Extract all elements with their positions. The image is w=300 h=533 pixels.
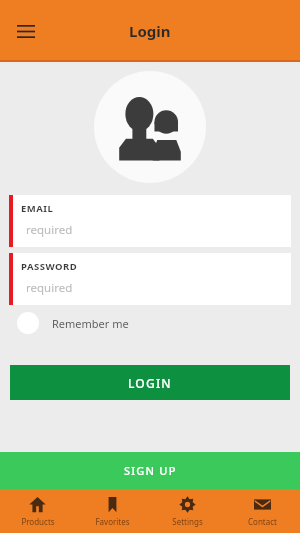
staticText: Login: [129, 21, 171, 41]
staticText: Favorites: [95, 516, 130, 527]
staticText: Settings: [172, 516, 203, 527]
staticText: Remember me: [52, 316, 129, 331]
staticText: EMAIL: [21, 202, 54, 215]
button[interactable]: Contact: [225, 489, 300, 533]
button[interactable]: Products: [0, 489, 75, 533]
button[interactable]: Remember me: [0, 305, 300, 341]
button[interactable]: LOGIN: [10, 365, 290, 400]
button[interactable]: SIGN UP: [0, 452, 300, 489]
staticText: PASSWORD: [21, 260, 78, 273]
staticText: Contact: [248, 516, 277, 527]
staticText: required: [26, 222, 73, 238]
button[interactable]: Settings: [150, 489, 225, 533]
staticText: SIGN UP: [124, 463, 177, 478]
button[interactable]: PASSWORD: [9, 253, 291, 305]
button[interactable]: Open navigation menu: [4, 9, 48, 53]
button[interactable]: EMAIL: [9, 195, 291, 247]
button[interactable]: Favorites: [75, 489, 150, 533]
staticText: LOGIN: [128, 375, 172, 391]
staticText: Products: [21, 516, 55, 527]
staticText: required: [26, 280, 73, 296]
